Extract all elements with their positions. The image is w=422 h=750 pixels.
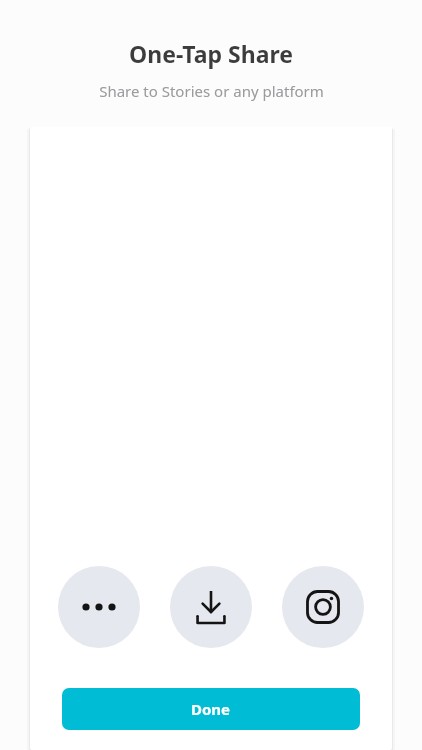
- button[interactable]: Download: [170, 566, 252, 648]
- staticText: One-Tap Share: [129, 38, 293, 69]
- button[interactable]: More options: [58, 566, 140, 648]
- button[interactable]: Done: [62, 688, 360, 730]
- staticText: Share to Stories or any platform: [99, 81, 324, 101]
- button[interactable]: Share to Instagram: [282, 566, 364, 648]
- staticText: Done: [191, 699, 231, 719]
